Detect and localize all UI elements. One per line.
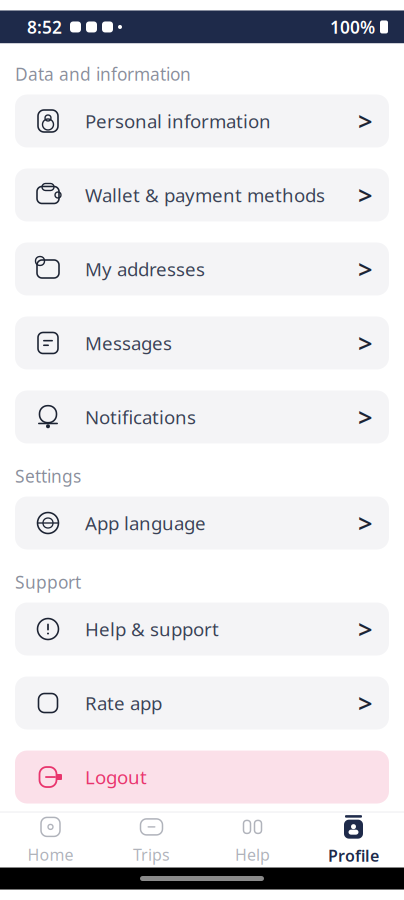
staticText: Messages (85, 331, 172, 355)
button[interactable]: Profile (303, 806, 404, 874)
button[interactable]: App language (15, 496, 389, 549)
staticText: > (358, 400, 372, 434)
button[interactable]: Help & support (15, 602, 389, 655)
staticText: Help & support (85, 617, 219, 641)
staticText: Personal information (85, 109, 271, 133)
staticText: > (358, 252, 372, 286)
staticText: Settings (15, 464, 81, 487)
staticText: > (358, 612, 372, 646)
staticText: Wallet & payment methods (85, 183, 325, 207)
staticText: Trips (133, 844, 170, 865)
staticText: App language (85, 511, 206, 535)
button[interactable]: Logout (15, 750, 389, 803)
button[interactable]: Rate app (15, 676, 389, 729)
button[interactable]: Home (0, 807, 101, 873)
button[interactable]: Help (202, 807, 303, 873)
staticText: Rate app (85, 691, 162, 715)
staticText: > (358, 178, 372, 212)
button[interactable]: Trips (101, 807, 202, 873)
staticText: Data and information (15, 62, 191, 85)
button[interactable]: Notifications (15, 390, 389, 443)
staticText: Logout (85, 765, 147, 789)
button[interactable]: Wallet & payment methods (15, 168, 389, 221)
button[interactable]: My addresses (15, 242, 389, 295)
staticText: > (358, 326, 372, 360)
staticText: Notifications (85, 405, 196, 429)
staticText: Profile (328, 845, 379, 866)
staticText: > (358, 104, 372, 138)
button[interactable]: Messages (15, 316, 389, 369)
staticText: Home (27, 844, 73, 865)
button[interactable]: Personal information (15, 94, 389, 147)
staticText: 100% (330, 15, 375, 38)
staticText: > (358, 686, 372, 720)
staticText: My addresses (85, 257, 205, 281)
staticText: 8:52 (27, 15, 62, 38)
staticText: > (358, 506, 372, 540)
staticText: Support (15, 570, 81, 593)
staticText: Help (235, 844, 270, 865)
